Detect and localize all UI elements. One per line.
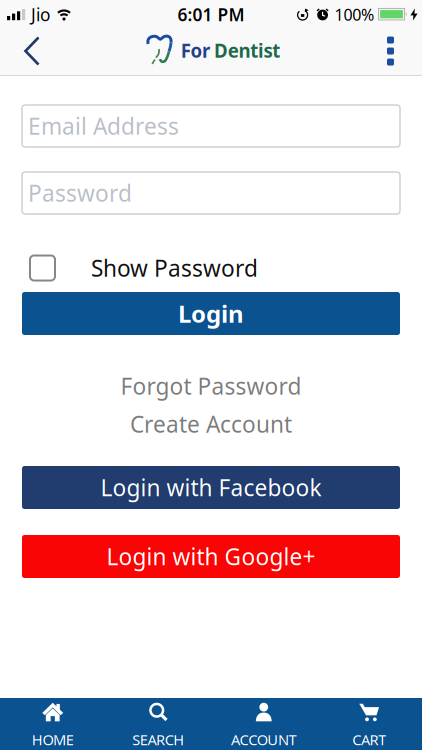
button[interactable]: More options <box>387 28 422 73</box>
staticText: 6:01 PM <box>177 3 244 26</box>
button[interactable]: SEARCH <box>105 698 211 750</box>
staticText: Login with Google+ <box>106 541 315 571</box>
button[interactable]: Login with Google+ <box>0 535 422 578</box>
staticText: Password <box>28 178 132 208</box>
button[interactable]: Show Password <box>0 255 422 281</box>
button[interactable]: Create Account <box>130 412 292 436</box>
staticText: Create Account <box>130 409 292 439</box>
staticText: Email Address <box>28 111 179 141</box>
staticText: Show Password <box>91 253 258 283</box>
button[interactable]: HOME <box>0 698 105 750</box>
staticText: Jio <box>31 3 50 26</box>
staticText: Dentist <box>214 38 280 63</box>
staticText: 100% <box>335 4 374 25</box>
staticText: Login with Facebook <box>100 472 321 502</box>
button[interactable]: Back <box>0 27 39 74</box>
button[interactable]: Login with Facebook <box>0 466 422 509</box>
button[interactable]: Forgot Password <box>120 374 301 398</box>
button[interactable]: CART <box>316 698 422 750</box>
staticText: ACCOUNT <box>231 730 297 749</box>
button[interactable]: Login <box>0 292 422 335</box>
staticText: SEARCH <box>132 730 184 749</box>
staticText: Login <box>178 298 244 329</box>
staticText: HOME <box>32 730 74 749</box>
staticText: Forgot Password <box>120 371 301 401</box>
staticText: CART <box>352 730 386 749</box>
staticText: For <box>181 38 210 63</box>
button[interactable]: ACCOUNT <box>211 698 316 750</box>
